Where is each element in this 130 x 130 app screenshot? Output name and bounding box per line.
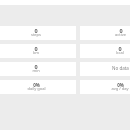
staticText: kcal	[116, 50, 124, 55]
button[interactable]: 0%	[80, 80, 130, 94]
button[interactable]: 0	[0, 26, 76, 40]
staticText: avg / day	[111, 86, 129, 91]
staticText: min	[32, 68, 40, 73]
staticText: 0	[34, 63, 38, 70]
button[interactable]: No data	[80, 62, 130, 76]
button[interactable]: 0	[0, 44, 76, 58]
staticText: 0	[118, 45, 122, 52]
button[interactable]: 0	[0, 62, 76, 76]
staticText: daily goal	[27, 86, 46, 91]
staticText: steps	[31, 32, 41, 37]
staticText: km	[33, 50, 39, 55]
button[interactable]: 0	[80, 44, 130, 58]
staticText: 0	[34, 45, 38, 52]
staticText: 0	[119, 27, 123, 34]
staticText: 0%	[33, 82, 40, 88]
button[interactable]: 0	[80, 26, 130, 40]
staticText: active	[115, 32, 126, 37]
staticText: 0%	[117, 82, 124, 88]
button[interactable]: 0%	[0, 80, 76, 94]
staticText: 0	[34, 27, 38, 34]
staticText: No data	[112, 65, 129, 71]
